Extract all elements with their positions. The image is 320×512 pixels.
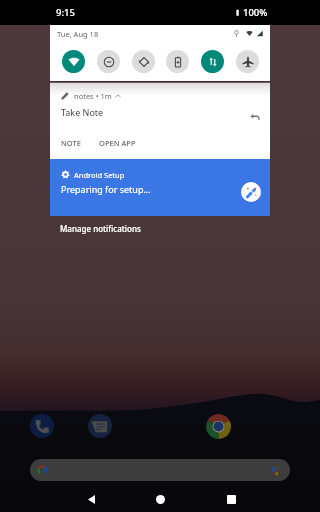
staticText: Preparing for setup... xyxy=(61,183,151,195)
button[interactable]: NOTE xyxy=(61,138,81,148)
staticText: NOTE xyxy=(61,138,81,148)
button[interactable]: Auto rotate xyxy=(132,50,155,73)
staticText: 9:15 xyxy=(56,6,75,19)
button[interactable]: Recents xyxy=(219,487,243,511)
button[interactable]: Mobile data xyxy=(201,50,224,73)
button[interactable]: Manage notifications xyxy=(60,223,141,234)
button[interactable]: Wi-Fi xyxy=(62,50,85,73)
button[interactable]: Phone xyxy=(30,414,54,438)
button[interactable]: notes • 1m xyxy=(50,83,270,159)
button[interactable]: Home xyxy=(148,487,172,511)
button[interactable]: Chrome xyxy=(206,414,231,439)
staticText: Take Note xyxy=(61,106,104,118)
button[interactable]: Messages xyxy=(88,414,112,438)
button[interactable]: Back xyxy=(79,487,103,511)
staticText: Android Setup xyxy=(74,170,125,180)
staticText: notes • 1m xyxy=(74,91,112,101)
button[interactable]: Android Setup xyxy=(50,159,270,216)
button[interactable]: Reply xyxy=(246,108,263,125)
button[interactable]: OPEN APP xyxy=(99,138,136,148)
button[interactable]: Do not disturb xyxy=(97,50,120,73)
button[interactable]: Search xyxy=(30,459,290,481)
button[interactable]: Airplane mode xyxy=(236,50,259,73)
staticText: Tue, Aug 18 xyxy=(57,29,99,39)
button[interactable]: Battery Saver xyxy=(166,50,189,73)
staticText: OPEN APP xyxy=(99,138,136,148)
staticText: Manage notifications xyxy=(60,223,141,234)
staticText: 100% xyxy=(243,6,268,19)
